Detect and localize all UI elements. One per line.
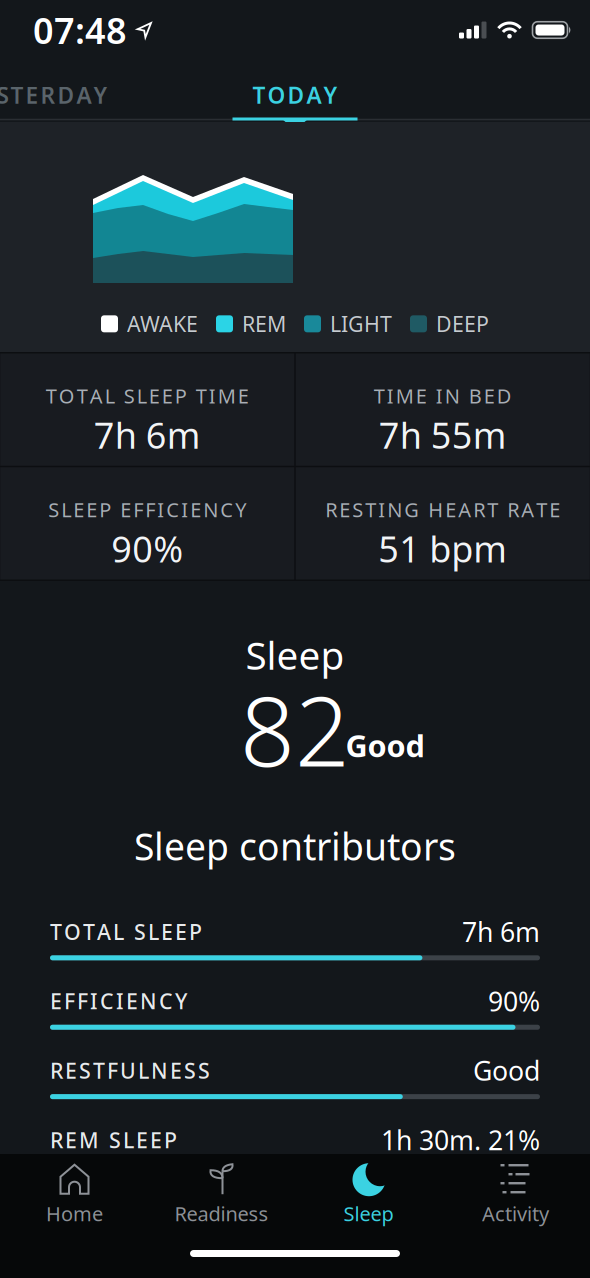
staticText: Home <box>46 1200 103 1227</box>
staticText: 90% <box>111 525 183 573</box>
button[interactable]: Readiness <box>148 1160 295 1230</box>
staticText: 7h 6m <box>462 914 540 949</box>
staticText: Sleep <box>343 1200 393 1227</box>
staticText: 1h 30m. 21% <box>381 1122 540 1158</box>
staticText: T I M E I N B E D <box>374 382 512 409</box>
staticText: S L E E P E F F I C I E N C Y <box>48 496 246 523</box>
staticText: Good <box>473 1053 540 1088</box>
staticText: E F F I C I E N C Y <box>50 987 187 1015</box>
button[interactable]: Sleep <box>295 1160 442 1230</box>
staticText: Activity <box>482 1200 549 1227</box>
button[interactable]: Activity <box>442 1160 589 1230</box>
button[interactable]: S T E R D A Y <box>0 80 107 110</box>
button[interactable]: T O D A Y <box>252 80 337 110</box>
staticText: 90% <box>488 983 540 1019</box>
staticText: T O T A L S L E E P T I M E <box>46 382 249 409</box>
staticText: S T E R D A Y <box>0 80 107 110</box>
staticText: REM <box>242 310 286 338</box>
button[interactable]: Home <box>1 1160 148 1230</box>
staticText: AWAKE <box>127 310 198 338</box>
staticText: R E S T F U L N E S S <box>50 1056 210 1085</box>
staticText: 82 <box>240 666 350 793</box>
staticText: 07:48 <box>33 6 127 54</box>
staticText: 51 bpm <box>378 525 507 573</box>
staticText: Good <box>345 725 424 766</box>
staticText: R E S T I N G H E A R T R A T E <box>325 496 560 523</box>
staticText: LIGHT <box>330 310 392 338</box>
staticText: T O D A Y <box>252 80 337 110</box>
staticText: R E M S L E E P <box>50 1126 177 1154</box>
staticText: Readiness <box>174 1200 268 1227</box>
staticText: 7h 6m <box>94 411 201 459</box>
staticText: 7h 55m <box>379 411 507 459</box>
staticText: T O T A L S L E E P <box>50 917 202 946</box>
staticText: DEEP <box>436 310 489 338</box>
staticText: Sleep contributors <box>134 821 456 871</box>
staticText: Sleep <box>245 629 344 680</box>
